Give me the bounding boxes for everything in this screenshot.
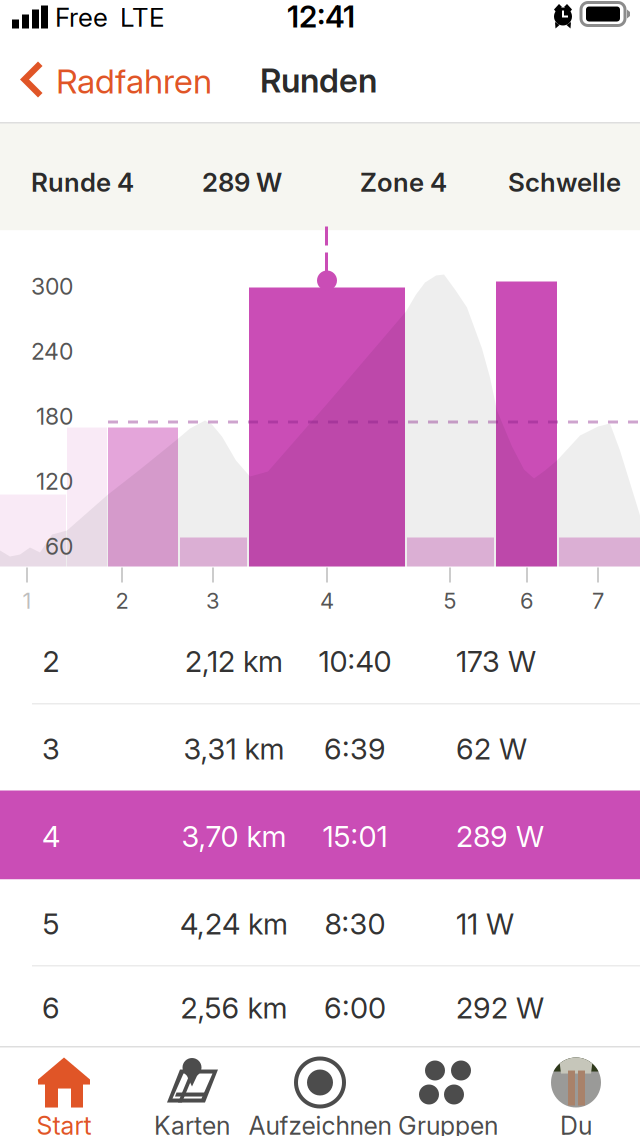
staticText: 5 [42,906,59,942]
button[interactable] [256,1047,384,1136]
staticText: 12:41 [287,0,355,35]
staticText: 6 [42,990,60,1026]
staticText: 4 [320,587,334,614]
staticText: 7 [592,587,604,614]
staticText: 5 [443,587,456,614]
button[interactable]: 5 [0,879,640,965]
button[interactable]: 2 [0,616,640,703]
button[interactable] [512,1047,640,1136]
staticText: Gruppen [398,1110,498,1136]
button[interactable] [0,1047,128,1136]
staticText: 6:39 [324,731,386,767]
staticText: 2,12 km [185,644,283,679]
staticText: 3,31 km [183,731,284,767]
staticText: 2 [115,587,128,614]
staticText: 289 W [456,819,544,854]
staticText: 11 W [456,906,514,942]
staticText: 240 [31,337,73,365]
staticText: 300 [31,272,73,300]
staticText: 62 W [456,731,527,767]
staticText: Runde 4 [31,166,134,198]
button[interactable] [128,1047,256,1136]
button[interactable] [384,1047,512,1136]
staticText: 6:00 [324,990,386,1026]
staticText: 2,56 km [180,990,287,1026]
staticText: 15:01 [322,819,387,854]
button[interactable]: 4 [0,790,640,879]
staticText: 3,70 km [181,819,286,854]
staticText: 289 W [202,166,282,198]
staticText: Du [560,1110,592,1136]
staticText: Start [36,1110,91,1136]
staticText: 6 [520,587,534,614]
staticText: 120 [36,467,73,495]
staticText: LTE [120,1,164,33]
staticText: 10:40 [318,644,391,679]
staticText: 3 [42,731,60,767]
staticText: 180 [36,402,73,430]
staticText: 8:30 [324,906,385,942]
staticText: 4 [42,819,60,854]
staticText: Zone 4 [360,166,447,198]
staticText: 4,24 km [180,906,288,942]
staticText: Aufzeichnen [248,1110,391,1136]
button[interactable]: 3 [0,704,640,790]
staticText: 173 W [456,644,536,679]
staticText: 60 [45,532,73,560]
button[interactable]: Radfahren [0,38,232,122]
staticText: Karten [154,1110,230,1136]
button[interactable]: 6 [0,966,640,1046]
staticText: 292 W [456,990,544,1026]
staticText: 3 [206,587,220,614]
staticText: Radfahren [56,60,212,102]
staticText: 1 [22,587,31,614]
staticText: Schwelle [508,166,621,198]
staticText: 2 [42,644,59,679]
staticText: Free [55,1,108,33]
staticText: Runden [260,60,377,100]
